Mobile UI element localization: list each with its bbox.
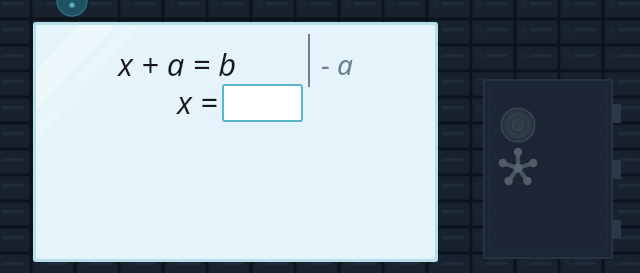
button[interactable]: Answer input field — [222, 84, 303, 122]
staticText: x = — [177, 81, 218, 123]
staticText: - a — [321, 45, 353, 83]
other: Safe door — [0, 0, 640, 273]
button[interactable]: x + a = b — [118, 43, 237, 85]
